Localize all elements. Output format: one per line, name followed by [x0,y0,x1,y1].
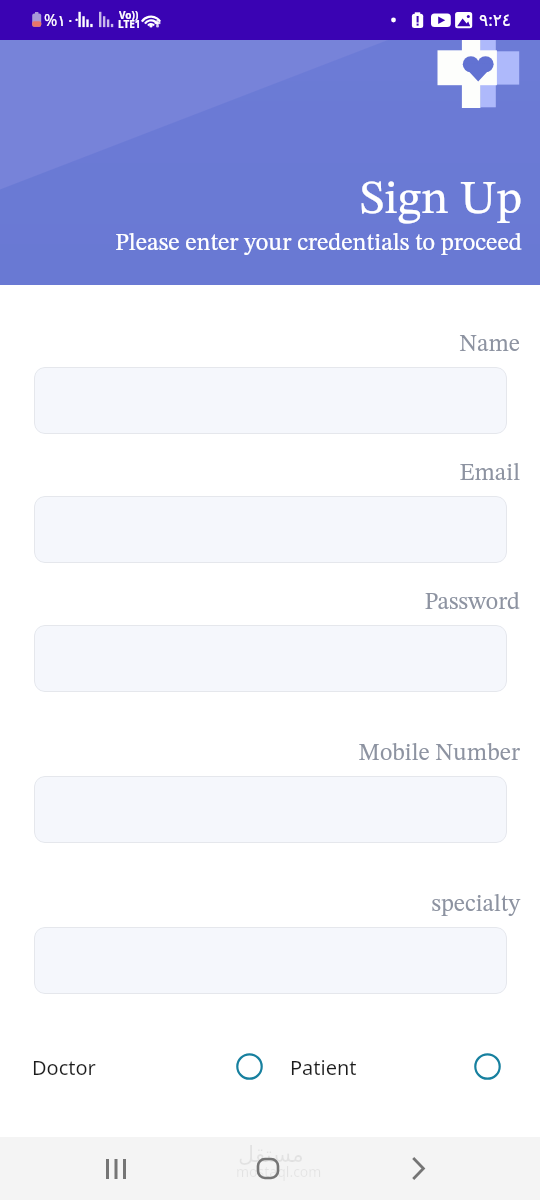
button[interactable]: Back [368,1137,468,1200]
staticText: Email [0,462,520,486]
staticText: Mobile Number [0,742,520,766]
button[interactable]: Doctor [22,1040,262,1092]
staticText: Sign Up [360,176,522,224]
staticText: mostaql.com [236,1162,322,1181]
staticText: Please enter your credentials to proceed [115,231,522,255]
staticText: %١٠· [44,9,79,31]
staticText: Name [0,333,520,357]
staticText: specialty [0,893,520,917]
staticText: مستقل [238,1142,304,1168]
staticText: Doctor [32,1054,96,1081]
button[interactable]: Recent apps [66,1137,166,1200]
button[interactable]: Home [218,1137,318,1200]
staticText: Patient [290,1054,357,1081]
button[interactable]: Patient [280,1040,520,1092]
staticText: LTE1 [118,17,141,31]
staticText: Vo)) [119,8,139,22]
staticText: ٩:٢٤ [479,8,511,31]
staticText: Password [0,591,520,615]
